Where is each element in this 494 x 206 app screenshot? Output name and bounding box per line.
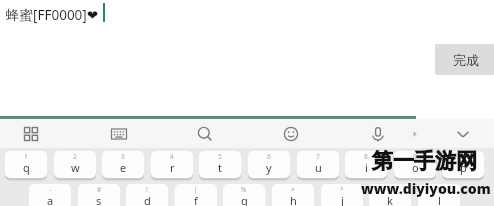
staticText: d [144,193,151,206]
staticText: i [365,160,368,175]
staticText: × [291,185,295,194]
staticText: 9 [413,152,417,161]
staticText: 6 [267,152,271,161]
button[interactable]: 3 [102,151,144,178]
button[interactable]: ^ [321,184,363,206]
staticText: ! [146,185,148,194]
staticText: ) [438,185,440,194]
staticText: l [438,193,441,206]
button[interactable]: × [272,184,314,206]
staticText: 5 [218,152,222,161]
button[interactable]: Hide keyboard [449,120,477,148]
staticText: a [47,193,54,206]
staticText: ^ [340,185,344,194]
staticText: % [241,185,247,194]
button[interactable]: - [29,184,71,206]
staticText: 第一手游网 [372,148,477,174]
staticText: 完成 [453,52,479,68]
button[interactable]: 6 [248,151,290,178]
button[interactable]: 9 [394,151,436,178]
button[interactable]: Emoji [277,120,305,148]
staticText: h [290,193,297,206]
staticText: e [120,160,127,175]
button[interactable]: ! [126,184,168,206]
button[interactable]: 8 [345,151,387,178]
button[interactable]: Apps [17,120,45,148]
button[interactable]: 5 [199,151,241,178]
button[interactable]: 1 [5,151,47,178]
button[interactable]: ) [418,184,460,206]
staticText: 0 [461,152,465,161]
button[interactable]: Keyboard [105,120,133,148]
staticText: 7 [316,152,320,161]
button[interactable]: 完成 [435,44,494,75]
staticText: ( [389,185,391,194]
button[interactable]: 4 [151,151,193,178]
staticText: s [96,193,102,206]
staticText: 蜂蜜[FF0000]❤ [6,6,99,24]
staticText: r [170,160,175,175]
button[interactable]: Search [191,120,219,148]
staticText: q [23,160,30,175]
button[interactable]: Voice input [364,120,392,148]
staticText: w [71,160,80,175]
button[interactable]: 0 [442,151,484,178]
button[interactable]: % [223,184,265,206]
staticText: u [315,160,322,175]
staticText: 4 [170,152,174,161]
button[interactable]: More [401,120,429,148]
staticText: 8 [364,152,368,161]
staticText: y [266,160,272,175]
staticText: p [460,160,467,175]
staticText: j [341,193,344,206]
staticText: f [194,193,198,206]
staticText: g [241,193,248,206]
staticText: 2 [73,152,77,161]
button[interactable]: 7 [297,151,339,178]
staticText: 1 [24,152,28,161]
staticText: # [97,185,102,194]
staticText: - [49,185,52,194]
staticText: k [387,193,393,206]
staticText: | [194,185,198,194]
staticText: o [412,160,419,175]
staticText: t [218,160,222,175]
button[interactable]: 蜂蜜[FF0000]❤ [6,4,206,26]
staticText: 3 [121,152,125,161]
button[interactable]: # [78,184,120,206]
staticText: www.diyiyou.com [361,179,491,198]
button[interactable]: 2 [54,151,96,178]
button[interactable]: | [175,184,217,206]
button[interactable]: ( [369,184,411,206]
